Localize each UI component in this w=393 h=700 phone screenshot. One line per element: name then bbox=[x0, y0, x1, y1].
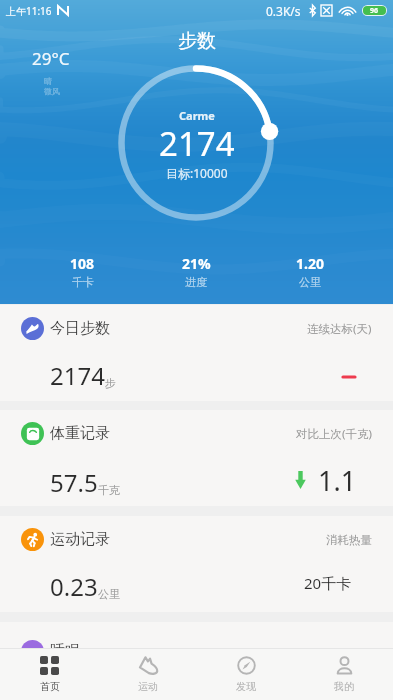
staticText: Carme bbox=[179, 108, 215, 123]
staticText: 0.3K/s bbox=[266, 3, 301, 19]
staticText: 29°C bbox=[32, 47, 70, 70]
staticText: 今日步数 bbox=[50, 319, 110, 338]
staticText: 首页 bbox=[40, 680, 60, 693]
button[interactable]: 今日步数 bbox=[0, 305, 393, 401]
staticText: 千卡 bbox=[72, 275, 94, 289]
staticText: 步数 bbox=[178, 29, 216, 53]
button[interactable]: 发现 bbox=[197, 649, 295, 700]
staticText: 对比上次(千克) bbox=[296, 426, 372, 442]
button[interactable]: 体重记录 bbox=[0, 410, 393, 506]
staticText: 消耗热量 bbox=[326, 533, 372, 547]
staticText: 晴 微风 bbox=[44, 76, 60, 96]
staticText: 体重记录 bbox=[50, 424, 110, 443]
staticText: 0.23 bbox=[50, 570, 98, 603]
staticText: 108 bbox=[70, 254, 95, 273]
staticText: 57.5 bbox=[50, 466, 98, 499]
staticText: 发现 bbox=[236, 680, 256, 693]
button[interactable]: 运动 bbox=[99, 649, 197, 700]
staticText: 上午11:16 bbox=[6, 4, 52, 18]
staticText: 千克 bbox=[98, 483, 120, 497]
button[interactable]: 我的 bbox=[295, 649, 393, 700]
staticText: 进度 bbox=[185, 275, 207, 289]
staticText: 我的 bbox=[334, 680, 354, 693]
staticText: 运动 bbox=[138, 680, 158, 693]
staticText: 连续达标(天) bbox=[307, 321, 372, 337]
staticText: 步 bbox=[105, 376, 116, 390]
staticText: 公里 bbox=[299, 275, 321, 289]
staticText: 20千卡 bbox=[304, 573, 352, 593]
staticText: 1.1 bbox=[318, 462, 357, 499]
button[interactable]: 运动记录 bbox=[0, 516, 393, 612]
staticText: 睡眠 bbox=[50, 642, 80, 661]
button[interactable]: 首页 bbox=[0, 649, 99, 700]
staticText: 运动记录 bbox=[50, 530, 110, 549]
staticText: 公里 bbox=[98, 587, 120, 601]
staticText: 目标:10000 bbox=[166, 165, 228, 181]
staticText: 21% bbox=[182, 254, 211, 273]
staticText: 2174 bbox=[50, 359, 105, 392]
staticText: 96 bbox=[370, 6, 379, 15]
staticText: 2174 bbox=[159, 121, 235, 166]
staticText: 1.20 bbox=[296, 254, 324, 273]
